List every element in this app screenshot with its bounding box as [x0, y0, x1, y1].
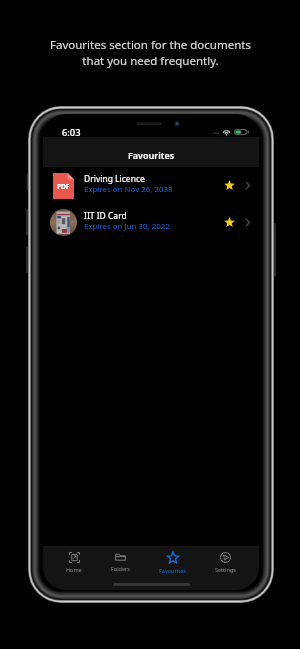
button[interactable]: Favourite [222, 215, 237, 230]
staticText: Favourites section for the documents tha… [50, 37, 251, 68]
button[interactable]: Favourites [153, 552, 192, 574]
button[interactable]: PDF [43, 167, 259, 204]
button[interactable]: Folders [105, 552, 136, 572]
staticText: Expires on Jun 30, 2022 [84, 221, 170, 232]
staticText: Favourites [128, 149, 175, 161]
staticText: Driving Licence [84, 173, 145, 185]
button[interactable]: Settings [209, 552, 242, 573]
staticText: 6:03 [62, 126, 81, 139]
staticText: Folders [111, 565, 130, 572]
staticText: PDF [57, 182, 70, 191]
staticText: Home [66, 566, 82, 573]
button[interactable]: IIT ID Card [43, 204, 259, 241]
staticText: IIT ID Card [84, 210, 127, 222]
staticText: Favourites [159, 567, 186, 574]
button[interactable]: Favourite [222, 178, 237, 193]
staticText: Expires on Nov 26, 2038 [84, 184, 173, 195]
button[interactable]: Home [60, 552, 88, 573]
staticText: Settings [215, 566, 236, 573]
